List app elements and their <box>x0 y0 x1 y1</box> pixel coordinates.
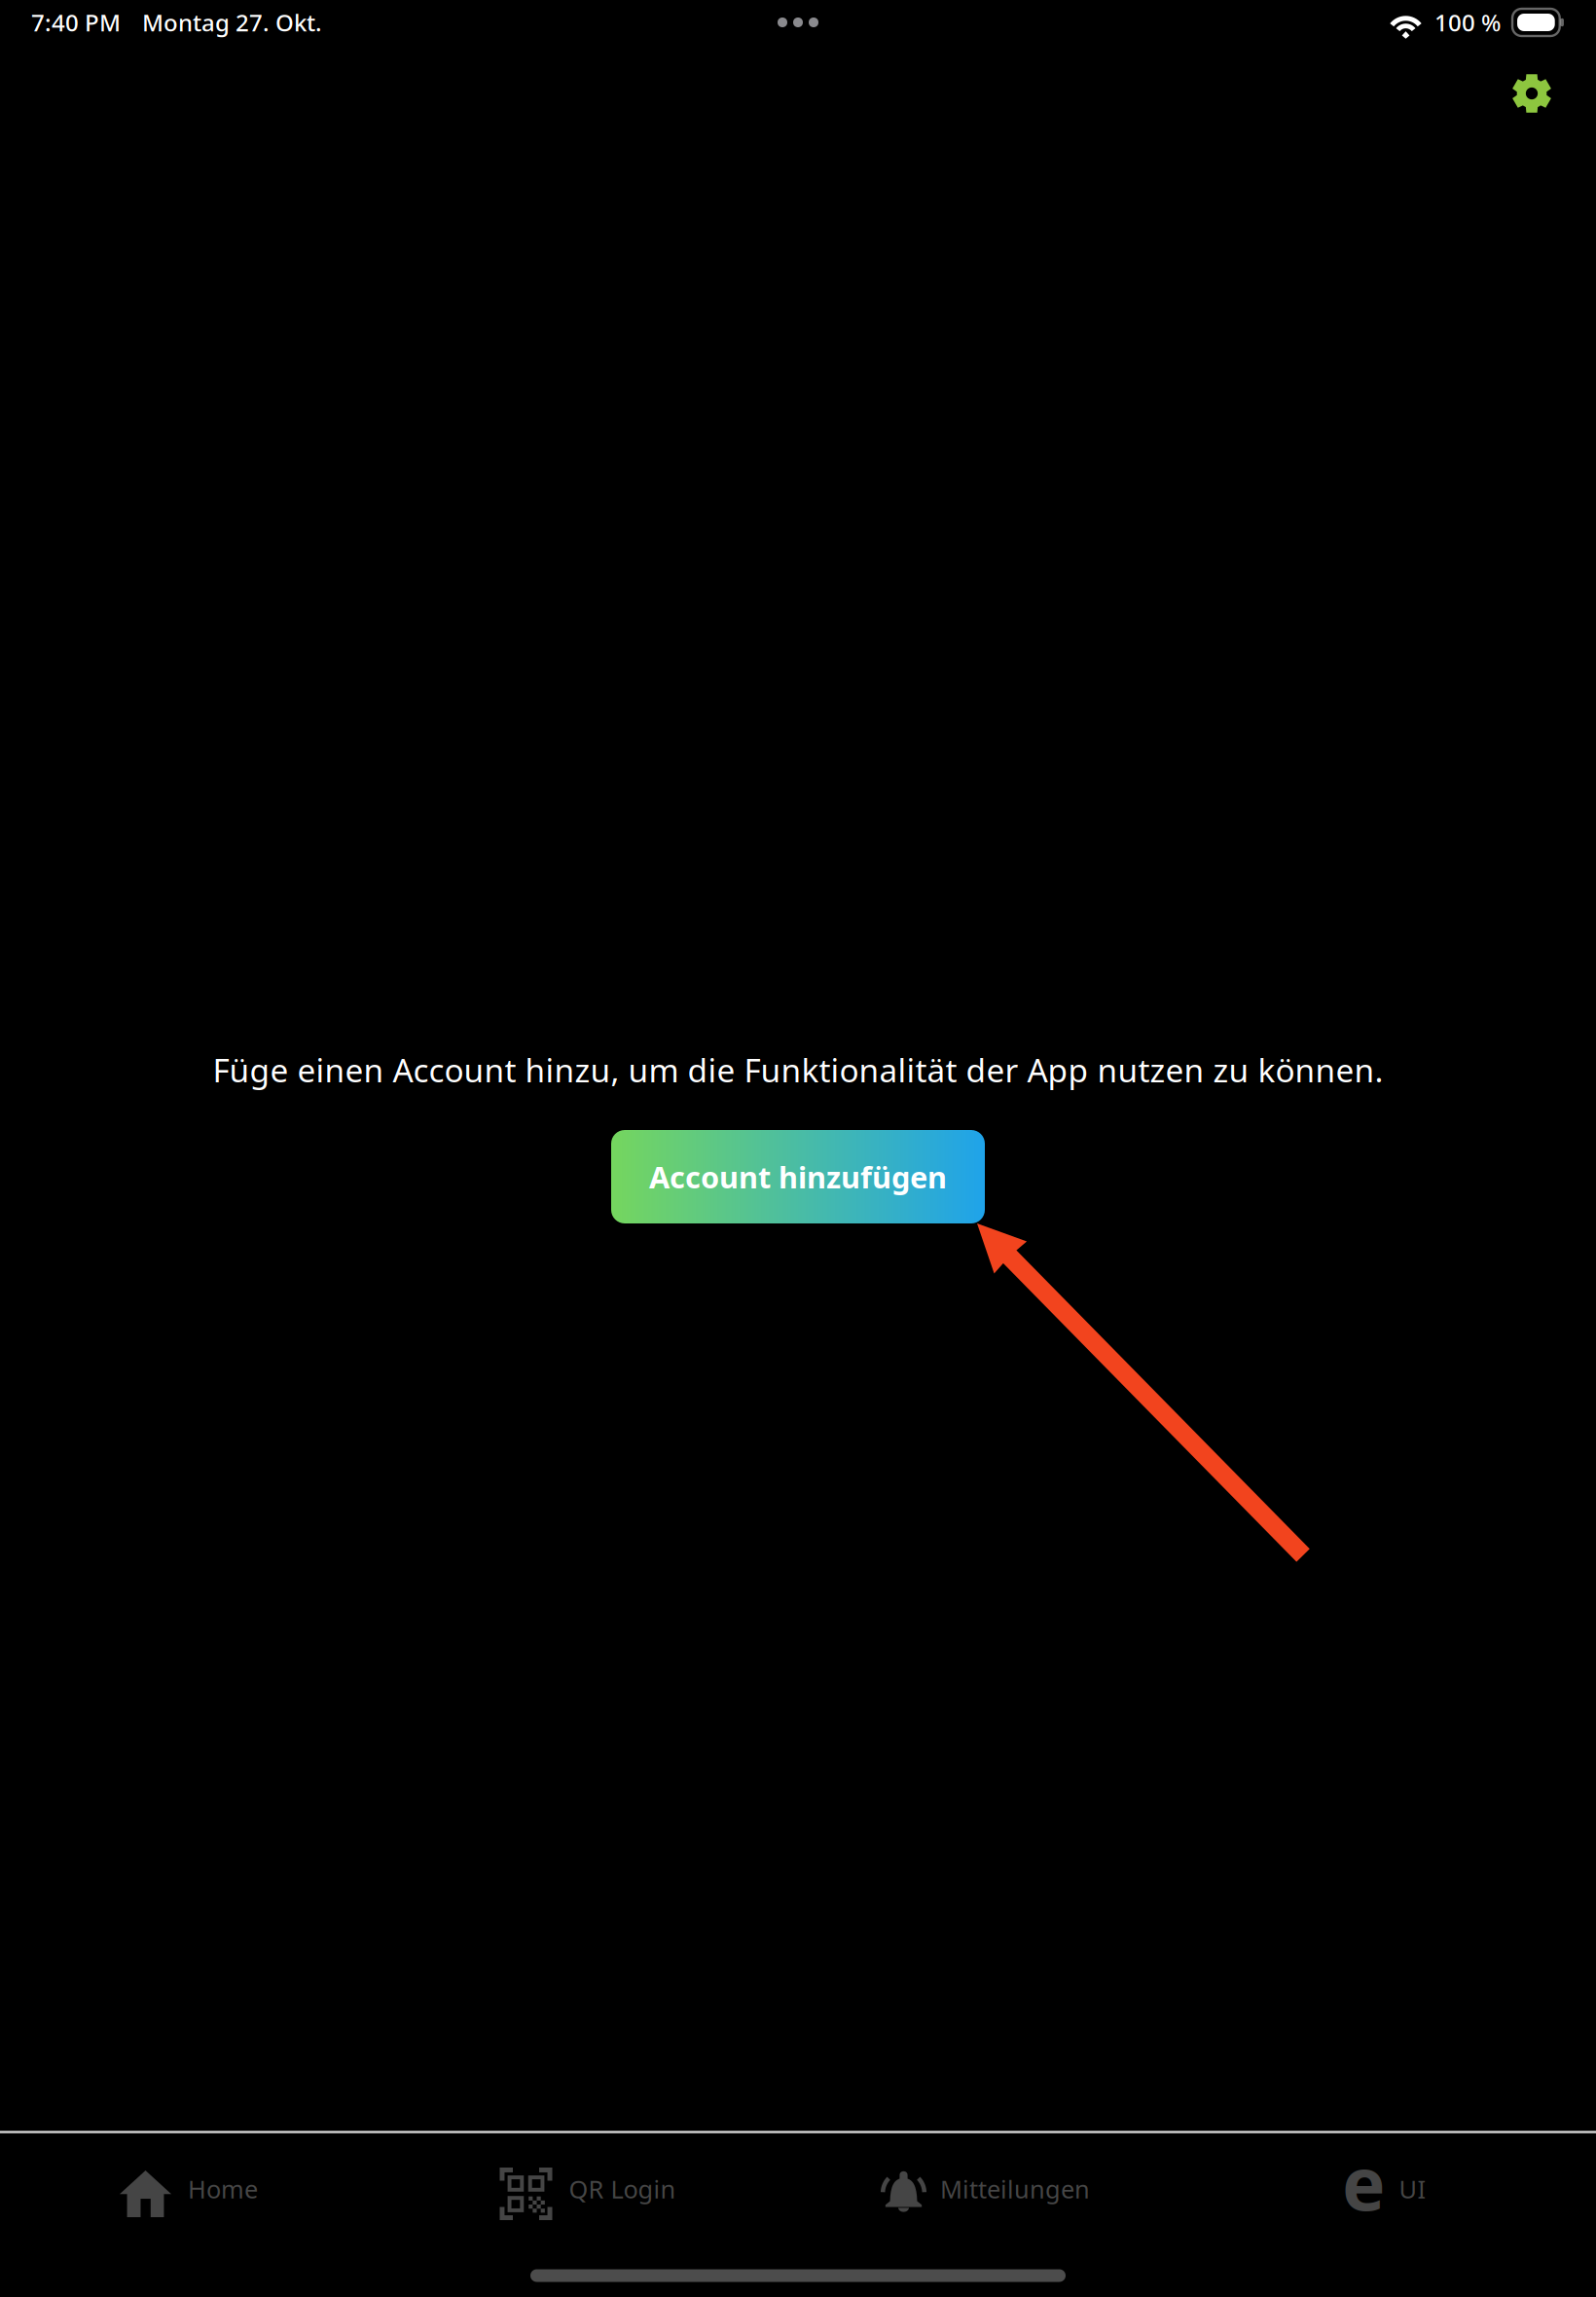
staticText: 7:40 PM <box>31 7 121 38</box>
staticText: Home <box>188 2173 258 2205</box>
button[interactable]: QR Login <box>399 2139 798 2248</box>
staticText: QR Login <box>569 2173 676 2205</box>
button[interactable]: Account hinzufügen <box>611 1130 985 1223</box>
staticText: Account hinzufügen <box>649 1157 947 1196</box>
staticText: Füge einen Account hinzu, um die Funktio… <box>213 1048 1383 1091</box>
button[interactable]: Home <box>0 2139 399 2248</box>
button[interactable]: Einstellungen <box>1494 56 1569 131</box>
staticText: UI <box>1399 2173 1426 2205</box>
button[interactable]: Mitteilungen <box>798 2139 1197 2248</box>
staticText: e <box>1342 2134 1386 2231</box>
staticText: 100 % <box>1434 7 1501 38</box>
staticText: Montag 27. Okt. <box>142 7 322 38</box>
button[interactable]: e <box>1197 2139 1596 2248</box>
staticText: Mitteilungen <box>940 2173 1090 2205</box>
